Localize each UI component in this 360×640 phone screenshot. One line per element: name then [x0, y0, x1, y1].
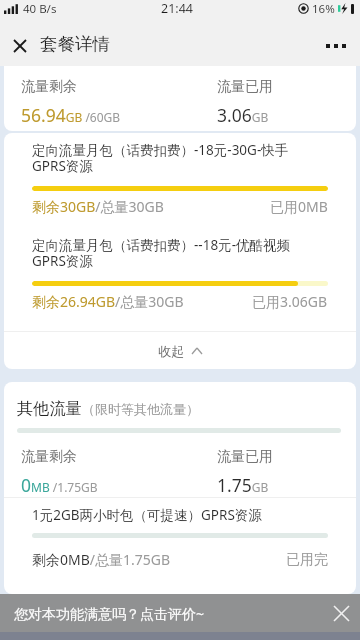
staticText: 流量已用: [217, 448, 273, 466]
button[interactable]: 收起: [4, 332, 356, 369]
staticText: 流量剩余: [21, 78, 77, 96]
staticText: 21:44: [161, 0, 193, 17]
staticText: 1元2GB两小时包（可提速）GPRS资源: [32, 506, 262, 524]
button[interactable]: Close: [0, 26, 40, 66]
staticText: 已用完: [286, 551, 328, 569]
button[interactable]: Dismiss: [322, 594, 360, 632]
staticText: 流量已用: [217, 78, 273, 96]
button[interactable]: 1元2GB两小时包（可提速）GPRS资源: [4, 498, 356, 594]
button[interactable]: 定向流量月包（话费扣费）-18元-30G-快手 GPRS资源: [4, 133, 356, 228]
staticText: 已用3.06GB: [252, 292, 328, 311]
staticText: 16%: [312, 1, 335, 17]
button[interactable]: More options: [316, 26, 360, 66]
staticText: 剩余30GB/总量30GB: [32, 197, 164, 216]
staticText: 剩余26.94GB/总量30GB: [32, 292, 184, 311]
staticText: 套餐详情: [40, 33, 110, 55]
staticText: 1.75GB: [217, 473, 269, 497]
staticText: 定向流量月包（话费扣费）-18元-30G-快手 GPRS资源: [32, 141, 289, 175]
staticText: 定向流量月包（话费扣费）--18元-优酷视频 GPRS资源: [32, 236, 290, 270]
staticText: （限时等其他流量）: [82, 401, 199, 417]
staticText: 流量剩余: [21, 448, 77, 466]
staticText: 40 B/s: [23, 1, 57, 17]
staticText: 其他流量: [17, 398, 82, 418]
staticText: 剩余0MB/总量1.75GB: [32, 550, 171, 569]
staticText: 3.06GB: [217, 103, 269, 127]
staticText: 收起: [158, 343, 184, 359]
staticText: 已用0MB: [270, 197, 328, 216]
staticText: 56.94GB /60GB: [21, 103, 121, 127]
button[interactable]: 定向流量月包（话费扣费）--18元-优酷视频 GPRS资源: [4, 228, 356, 331]
button[interactable]: 您对本功能满意吗？点击评价~: [0, 594, 360, 632]
staticText: 0MB /1.75GB: [21, 473, 98, 497]
staticText: 您对本功能满意吗？点击评价~: [14, 604, 205, 623]
